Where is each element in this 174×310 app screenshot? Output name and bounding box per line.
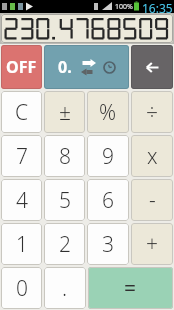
staticText: 0.: [58, 56, 72, 78]
button[interactable]: 4: [1, 179, 42, 221]
staticText: 4: [16, 186, 28, 215]
staticText: 2: [59, 230, 71, 259]
staticText: 0: [16, 274, 28, 303]
button[interactable]: .: [44, 267, 86, 309]
staticText: %: [99, 98, 117, 127]
button[interactable]: x: [131, 135, 173, 177]
button[interactable]: 8: [44, 135, 85, 177]
button[interactable]: 7: [1, 135, 42, 177]
button[interactable]: -: [131, 179, 173, 221]
staticText: ÷: [146, 98, 158, 127]
button[interactable]: ÷: [131, 91, 173, 133]
staticText: 6: [102, 186, 114, 215]
button[interactable]: 0.: [44, 45, 129, 89]
staticText: x: [147, 142, 158, 171]
button[interactable]: 2: [44, 223, 85, 265]
button[interactable]: +: [131, 223, 173, 265]
staticText: ±: [59, 98, 71, 127]
staticText: 7: [16, 142, 28, 171]
staticText: .: [62, 274, 68, 303]
staticText: -: [149, 186, 156, 215]
staticText: 1: [16, 230, 28, 259]
staticText: OFF: [6, 56, 37, 78]
staticText: =: [124, 274, 137, 303]
button[interactable]: [131, 45, 173, 89]
button[interactable]: 5: [44, 179, 85, 221]
button[interactable]: 0: [1, 267, 42, 309]
staticText: 16:35: [142, 0, 173, 13]
staticText: 9: [102, 142, 114, 171]
button[interactable]: %: [87, 91, 129, 133]
button[interactable]: ±: [44, 91, 85, 133]
staticText: +: [146, 230, 158, 259]
button[interactable]: 3: [87, 223, 129, 265]
button[interactable]: OFF: [1, 45, 42, 89]
button[interactable]: =: [88, 267, 173, 309]
button[interactable]: 1: [1, 223, 42, 265]
staticText: C: [15, 98, 29, 127]
button[interactable]: 9: [87, 135, 129, 177]
staticText: 8: [59, 142, 71, 171]
staticText: 5: [59, 186, 71, 215]
button[interactable]: 6: [87, 179, 129, 221]
staticText: 3: [102, 230, 114, 259]
staticText: 100%: [115, 2, 133, 12]
button[interactable]: C: [1, 91, 42, 133]
